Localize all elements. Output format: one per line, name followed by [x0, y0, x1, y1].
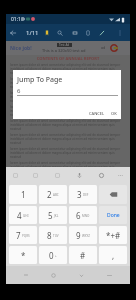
staticText: * — [21, 250, 26, 261]
staticText: lorem ipsum dolor sit amet consectetur a… — [10, 119, 126, 131]
staticText: lorem ipsum dolor sit amet consectetur a… — [10, 91, 126, 103]
button[interactable]: Highlight — [96, 24, 108, 41]
button[interactable]: , — [99, 246, 127, 264]
staticText: JKL — [54, 214, 59, 218]
button[interactable]: Back — [7, 24, 19, 41]
staticText: Nice job! — [10, 45, 32, 52]
staticText: WXYZ — [82, 234, 90, 238]
button[interactable]: 2 — [39, 185, 67, 204]
button[interactable]: 5 — [39, 206, 67, 224]
button[interactable]: Bookmark — [41, 24, 53, 41]
staticText: lorem ipsum dolor sit amet consectetur a… — [10, 105, 126, 117]
button[interactable]: Search — [54, 24, 66, 41]
staticText: Done — [107, 212, 120, 219]
button[interactable]: # — [69, 246, 97, 264]
button[interactable]: Done — [99, 206, 127, 224]
staticText: 3 — [77, 189, 82, 200]
button[interactable]: 3 — [69, 185, 97, 204]
button[interactable]: More options — [115, 24, 125, 41]
button[interactable]: 1 — [9, 185, 37, 204]
button[interactable]: Screenshot — [69, 24, 81, 41]
button[interactable]: 4 — [9, 206, 37, 224]
staticText: 6 — [76, 210, 81, 221]
button[interactable]: * — [9, 246, 37, 264]
button[interactable]: Clipboard — [10, 169, 21, 182]
button[interactable]: Backspace — [99, 185, 127, 204]
button[interactable]: 6 — [69, 206, 97, 224]
button[interactable]: GIF — [52, 169, 63, 182]
button[interactable]: 7 — [9, 226, 37, 244]
staticText: CANCEL — [89, 111, 105, 116]
button[interactable]: 9 — [69, 226, 97, 244]
button[interactable]: OK — [109, 108, 119, 119]
staticText: lorem ipsum dolor sit amet consectetur a… — [10, 147, 126, 159]
button[interactable]: 0 — [39, 246, 67, 264]
staticText: , — [112, 250, 115, 261]
staticText: lorem ipsum dolor sit amet consectetur a… — [10, 133, 126, 145]
staticText: lorem ipsum dolor sit amet consectetur a… — [10, 77, 126, 89]
staticText: TUV — [53, 234, 59, 238]
staticText: 9 — [76, 230, 81, 241]
button[interactable]: Settings — [96, 169, 107, 182]
staticText: 8 — [47, 230, 52, 241]
staticText: GHI — [23, 214, 29, 218]
staticText: 1/11 — [26, 29, 39, 37]
staticText: DEF — [83, 193, 89, 197]
staticText: lorem ipsum dolor sit amet consectetur a… — [10, 161, 126, 167]
button[interactable]: CANCEL — [87, 108, 107, 119]
staticText: MNO — [82, 214, 90, 218]
staticText: 2 — [47, 189, 52, 200]
button[interactable]: 8 — [39, 226, 67, 244]
staticText: Jump To Page — [17, 75, 63, 85]
staticText: *+# — [106, 230, 121, 241]
staticText: 01:13 — [11, 16, 24, 23]
button[interactable]: Home — [39, 266, 67, 284]
staticText: Test Ad — [59, 43, 70, 47]
button[interactable]: Notes — [82, 24, 94, 41]
staticText: OK — [111, 111, 117, 116]
button[interactable]: Voice input — [74, 169, 85, 182]
staticText: 7 — [16, 230, 21, 241]
staticText: 1 — [21, 189, 26, 200]
button[interactable]: More options — [115, 169, 126, 182]
staticText: ABC — [53, 193, 59, 197]
staticText: + — [55, 254, 57, 258]
button[interactable]: *+# — [99, 226, 127, 244]
staticText: ad — [101, 45, 106, 50]
staticText: 5 — [48, 210, 53, 221]
staticText: This is a 320x50 test ad — [42, 48, 86, 53]
staticText: PQRS — [22, 234, 30, 238]
staticText: lorem ipsum dolor sit amet consectetur a… — [10, 63, 126, 75]
staticText: 0 — [49, 250, 54, 261]
staticText: 4 — [17, 210, 22, 221]
button[interactable]: Hide keyboard — [95, 266, 123, 284]
button[interactable]: Sticker — [30, 169, 41, 182]
staticText: # — [80, 250, 86, 261]
staticText: CONTENTS OF ANNUAL REPORT — [10, 56, 126, 61]
staticText: 6 — [17, 87, 21, 95]
